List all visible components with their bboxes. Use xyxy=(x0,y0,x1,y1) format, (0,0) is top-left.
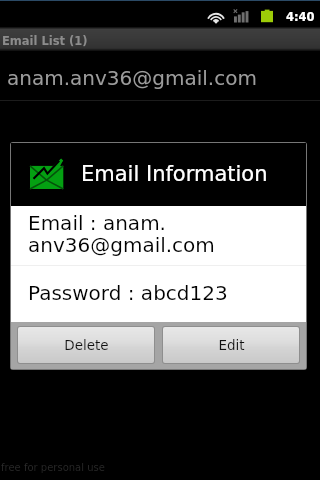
staticText: anam.anv36@gmail.com xyxy=(7,66,257,89)
button[interactable]: Edit xyxy=(163,327,299,363)
staticText: Edit xyxy=(218,337,245,353)
button[interactable]: anam.anv36@gmail.com xyxy=(0,51,320,100)
staticText: Email Information xyxy=(81,162,268,186)
other: Mobile signal xyxy=(234,9,249,23)
staticText: free for personal use xyxy=(1,462,105,474)
other: Battery xyxy=(261,9,273,23)
other: Wi-Fi signal xyxy=(206,9,226,23)
staticText: Email : anam. anv36@gmail.com xyxy=(28,211,215,257)
button[interactable]: Delete xyxy=(18,327,154,363)
staticText: Password : abcd123 xyxy=(28,281,228,304)
staticText: 4:40 xyxy=(286,10,315,23)
staticText: Email List (1) xyxy=(2,34,88,47)
staticText: Delete xyxy=(64,337,109,353)
